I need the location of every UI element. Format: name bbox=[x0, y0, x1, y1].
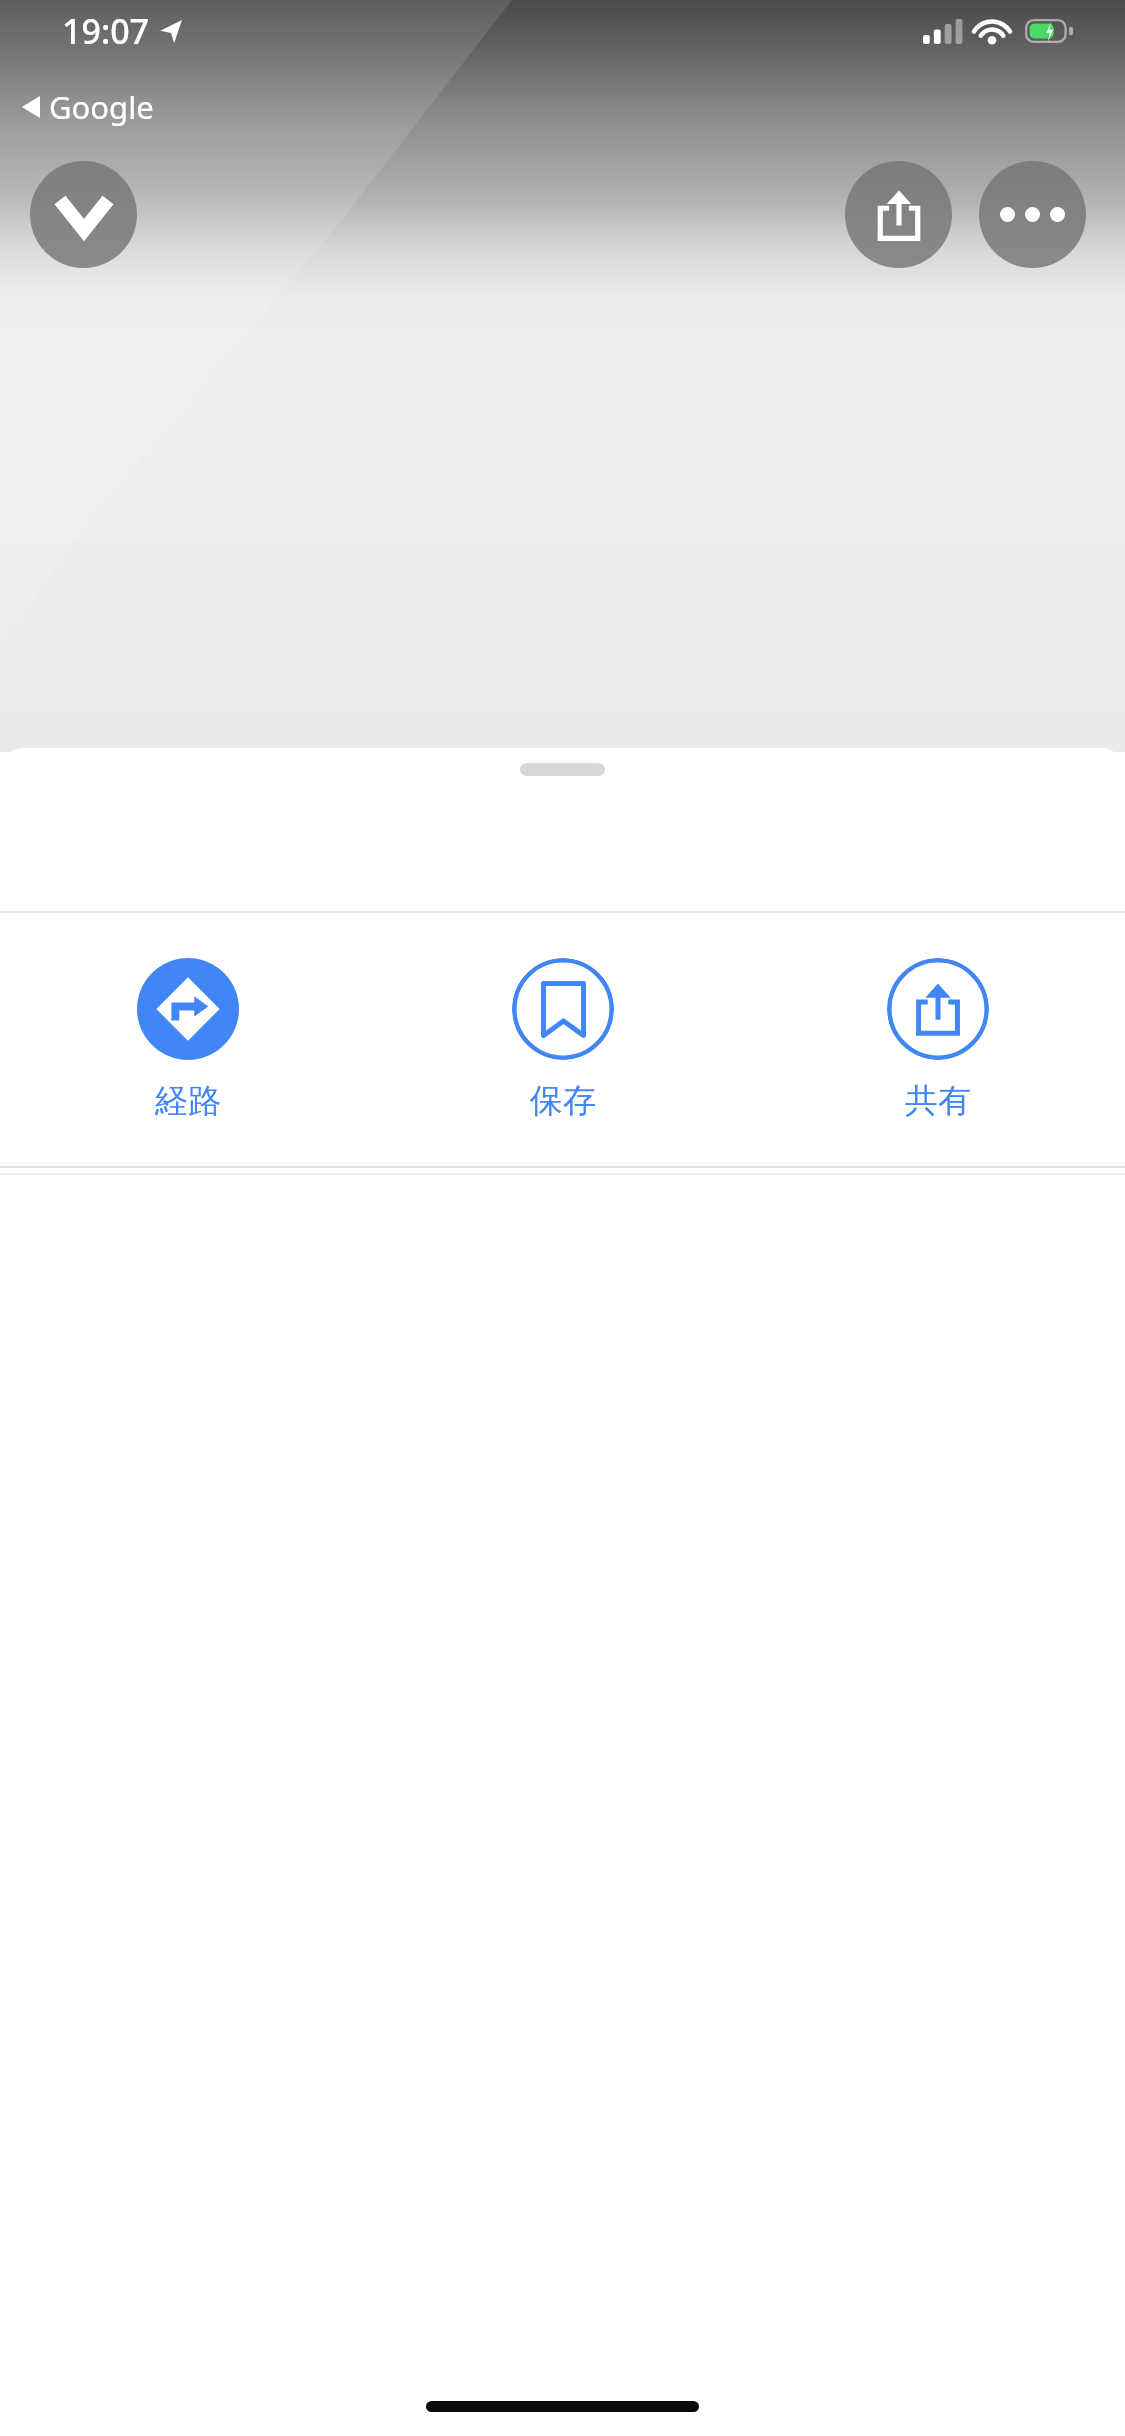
button[interactable]: 共有 bbox=[750, 913, 1125, 1166]
button[interactable]: Collapse bbox=[30, 161, 137, 268]
button[interactable]: Share bbox=[845, 161, 952, 268]
button[interactable]: 経路 bbox=[0, 913, 375, 1166]
staticText: 19:07 bbox=[62, 8, 150, 54]
staticText: 共有 bbox=[905, 1080, 971, 1122]
staticText: 保存 bbox=[530, 1080, 596, 1122]
button[interactable]: 保存 bbox=[375, 913, 750, 1166]
staticText: Google bbox=[49, 86, 154, 128]
button[interactable]: Google bbox=[16, 80, 160, 134]
staticText: 経路 bbox=[155, 1080, 221, 1122]
button[interactable]: More options bbox=[979, 161, 1086, 268]
